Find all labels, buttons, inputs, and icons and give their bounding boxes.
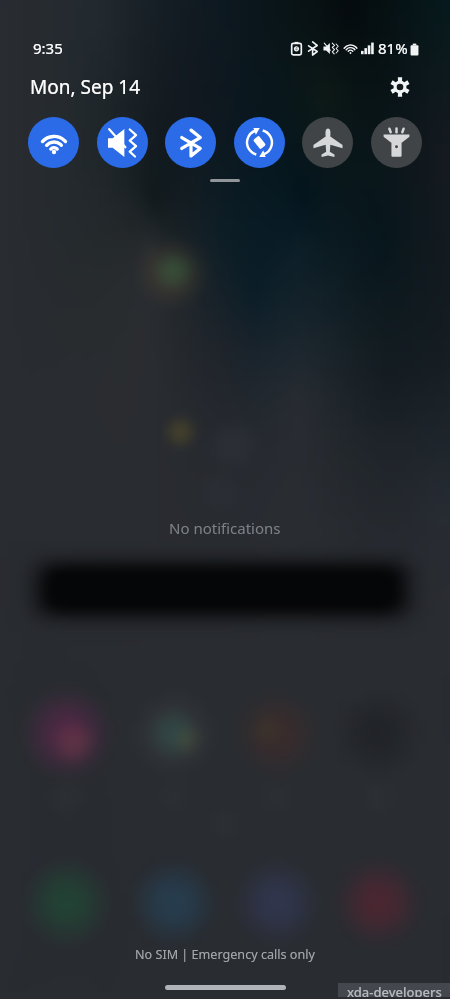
- button[interactable]: Auto rotate: [234, 117, 285, 168]
- staticText: No notifications: [169, 518, 281, 538]
- button[interactable]: Settings: [383, 70, 417, 104]
- staticText: xda-developers: [347, 983, 442, 997]
- staticText: No SIM | Emergency calls only: [135, 946, 315, 963]
- staticText: Mon, Sep 14: [30, 74, 141, 100]
- button[interactable]: Wi-Fi: [28, 117, 79, 168]
- button[interactable]: Flashlight: [371, 117, 422, 168]
- staticText: 81%: [378, 38, 408, 58]
- button[interactable]: Airplane mode: [302, 117, 353, 168]
- button[interactable]: Sound mode: [97, 117, 148, 168]
- button[interactable]: Bluetooth: [165, 117, 216, 168]
- staticText: 9:35: [33, 38, 63, 58]
